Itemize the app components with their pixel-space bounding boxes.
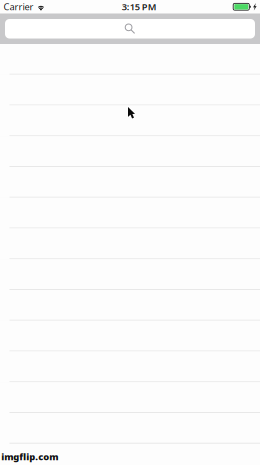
button[interactable] <box>0 136 260 167</box>
staticText: imgflip.com <box>0 451 57 464</box>
button[interactable] <box>0 105 260 136</box>
staticText: imgflip.com <box>0 450 57 463</box>
staticText: imgflip.com <box>0 450 57 462</box>
staticText: imgflip.com <box>2 451 59 464</box>
staticText: Carrier <box>3 1 33 13</box>
staticText: imgflip.com <box>1 449 58 462</box>
staticText: imgflip.com <box>1 451 58 464</box>
staticText: 3:15 PM <box>122 1 157 13</box>
button[interactable] <box>0 382 260 413</box>
button[interactable]: Search <box>0 19 260 38</box>
staticText: imgflip.com <box>2 450 59 462</box>
staticText: imgflip.com <box>1 450 58 463</box>
staticText: imgflip.com <box>2 450 59 463</box>
button[interactable] <box>0 259 260 290</box>
